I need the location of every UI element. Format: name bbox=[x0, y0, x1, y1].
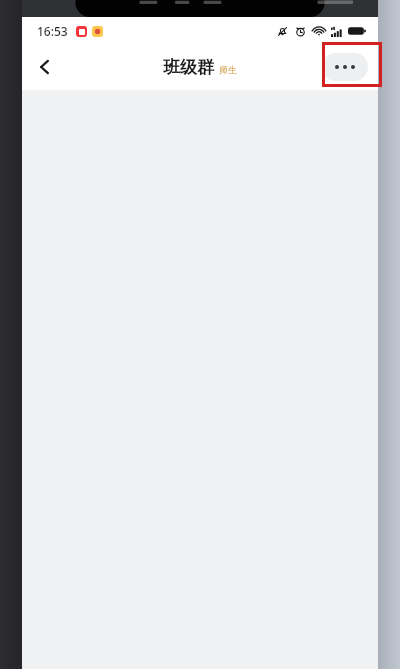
staticText: 班级群 bbox=[163, 57, 214, 78]
staticText: 师生 bbox=[219, 64, 237, 75]
staticText: 16:53 bbox=[37, 23, 68, 39]
button[interactable]: Back bbox=[22, 44, 68, 90]
button[interactable]: More options bbox=[322, 53, 368, 81]
